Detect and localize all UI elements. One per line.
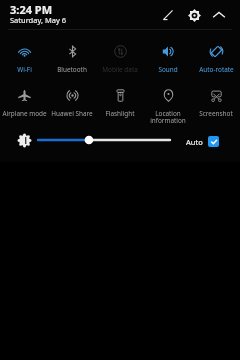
staticText: Screenshot (199, 109, 233, 118)
button[interactable]: Sound (144, 36, 192, 80)
button[interactable]: Brightness (17, 133, 32, 148)
staticText: 3:24 PM (10, 2, 53, 17)
button[interactable]: Huawei Share (48, 80, 96, 124)
button[interactable]: Auto-rotate (192, 36, 240, 80)
staticText: Airplane mode (2, 109, 47, 118)
button[interactable]: Location information (144, 80, 192, 124)
staticText: Mobile data (102, 65, 138, 74)
staticText: Flashlight (105, 109, 135, 118)
button[interactable]: Bluetooth (48, 36, 96, 80)
button[interactable]: Edit order of quick settings (158, 5, 178, 25)
button[interactable]: Brightness slider (38, 133, 170, 147)
button[interactable]: Screenshot (192, 80, 240, 124)
button[interactable]: Mobile data (96, 36, 144, 80)
button[interactable]: Flashlight (96, 80, 144, 124)
button[interactable]: Airplane mode (0, 80, 48, 124)
button[interactable]: Collapse panel (209, 5, 229, 25)
button[interactable]: Auto (186, 136, 219, 147)
button[interactable]: Settings (184, 5, 204, 25)
staticText: Auto-rotate (199, 65, 234, 74)
staticText: Wi-Fi (17, 65, 32, 74)
staticText: Sound (158, 65, 178, 74)
staticText: Saturday, May 6 (10, 15, 66, 25)
staticText: Auto (186, 137, 203, 147)
staticText: Location information (150, 109, 186, 124)
button[interactable]: Wi-Fi (0, 36, 48, 80)
staticText: Bluetooth (57, 65, 87, 74)
staticText: Huawei Share (51, 109, 93, 118)
